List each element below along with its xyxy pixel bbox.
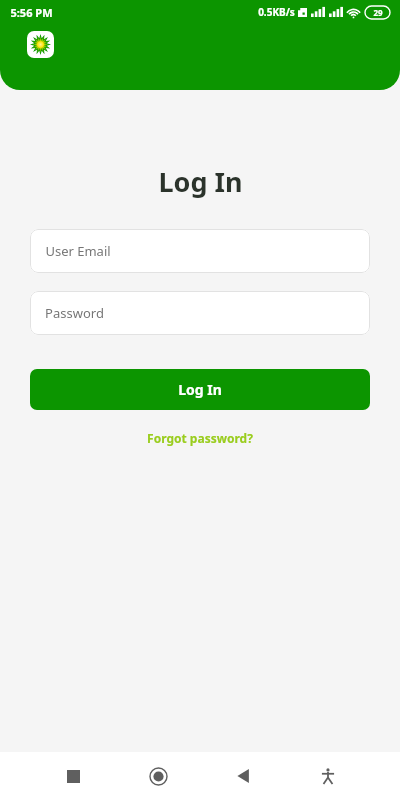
button[interactable]: Log In <box>30 369 370 410</box>
staticText: User Email <box>45 242 111 260</box>
staticText: Forgot password? <box>147 430 253 446</box>
button[interactable]: Recents <box>49 752 97 800</box>
button[interactable]: BP logo <box>27 31 54 58</box>
staticText: Log In <box>178 380 222 399</box>
button[interactable]: User Email <box>30 229 370 273</box>
button[interactable]: Home <box>134 752 182 800</box>
button[interactable]: Password <box>30 291 370 335</box>
button[interactable]: Forgot password? <box>141 428 259 448</box>
staticText: Log In <box>158 163 243 200</box>
staticText: 29 <box>373 7 383 18</box>
button[interactable]: Accessibility <box>304 752 352 800</box>
staticText: 5:56 PM <box>10 5 53 20</box>
staticText: Password <box>45 304 104 322</box>
button[interactable]: Back <box>219 752 267 800</box>
staticText: 0.5KB/s <box>258 5 295 19</box>
